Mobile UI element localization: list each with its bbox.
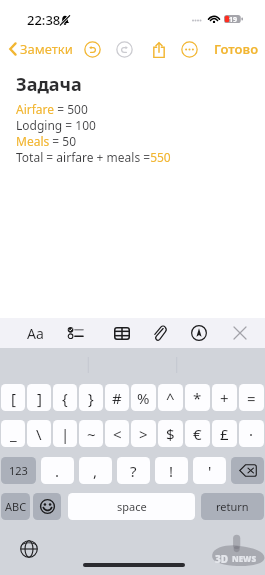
button[interactable]: Table: [108, 319, 136, 347]
staticText: #: [112, 388, 122, 408]
button[interactable]: Заметки: [9, 40, 73, 58]
button[interactable]: ·: [239, 420, 264, 447]
staticText: Задача: [16, 72, 82, 97]
button[interactable]: }: [79, 384, 103, 411]
button[interactable]: More options: [177, 37, 202, 62]
staticText: {: [62, 388, 68, 408]
staticText: ABC: [5, 499, 27, 514]
button[interactable]: 123: [1, 457, 36, 484]
button[interactable]: ]: [27, 384, 51, 411]
button[interactable]: €: [185, 420, 210, 447]
staticText: £: [220, 424, 229, 444]
staticText: ,: [93, 461, 98, 481]
staticText: ·: [249, 424, 254, 444]
staticText: %: [137, 388, 150, 408]
staticText: \: [36, 424, 42, 444]
button[interactable]: >: [131, 420, 156, 447]
staticText: $: [166, 424, 175, 444]
button[interactable]: Delete: [231, 457, 264, 484]
staticText: !: [169, 461, 174, 481]
staticText: 19: [229, 15, 238, 23]
staticText: >: [139, 424, 148, 444]
staticText: Airfare = 500 Lodging = 100 Meals = 50 T…: [16, 101, 171, 165]
staticText: +: [220, 388, 229, 408]
staticText: ?: [130, 461, 137, 481]
staticText: Заметки: [20, 40, 73, 58]
button[interactable]: Redo: [112, 37, 137, 62]
button[interactable]: =: [239, 384, 264, 411]
button[interactable]: \: [27, 420, 51, 447]
staticText: .: [55, 461, 60, 481]
staticText: 123: [9, 463, 28, 478]
staticText: 22:38: [27, 11, 61, 29]
staticText: Готово: [214, 40, 259, 58]
staticText: ': [208, 461, 212, 481]
staticText: space: [117, 499, 147, 514]
staticText: 3D: [215, 552, 229, 566]
button[interactable]: <: [105, 420, 129, 447]
button[interactable]: $: [158, 420, 183, 447]
button[interactable]: [: [1, 384, 25, 411]
button[interactable]: Share: [148, 38, 170, 62]
button[interactable]: Attach: [145, 319, 173, 347]
staticText: NEWS: [232, 553, 256, 564]
button[interactable]: *: [185, 384, 210, 411]
button[interactable]: ~: [79, 420, 103, 447]
button[interactable]: Checklist: [61, 319, 89, 347]
button[interactable]: £: [212, 420, 237, 447]
staticText: ^: [166, 388, 175, 408]
button[interactable]: Change language: [17, 537, 41, 561]
staticText: <: [113, 424, 122, 444]
button[interactable]: |: [53, 420, 77, 447]
button[interactable]: #: [105, 384, 129, 411]
button[interactable]: {: [53, 384, 77, 411]
button[interactable]: ^: [158, 384, 183, 411]
staticText: ]: [37, 388, 42, 408]
button[interactable]: Emoji: [33, 493, 61, 520]
button[interactable]: Markup: [185, 319, 213, 347]
staticText: =: [247, 388, 256, 408]
button[interactable]: Close keyboard: [226, 319, 254, 347]
button[interactable]: ,: [79, 457, 112, 484]
staticText: [: [11, 388, 16, 408]
staticText: *: [193, 388, 202, 408]
button[interactable]: Undo: [80, 37, 105, 62]
button[interactable]: .: [41, 457, 74, 484]
button[interactable]: %: [131, 384, 156, 411]
button[interactable]: Готово: [214, 40, 259, 58]
button[interactable]: ?: [117, 457, 150, 484]
staticText: ~: [87, 424, 96, 444]
staticText: |: [61, 424, 70, 444]
button[interactable]: +: [212, 384, 237, 411]
staticText: Aa: [27, 324, 44, 343]
button[interactable]: ': [193, 457, 226, 484]
staticText: }: [88, 388, 94, 408]
button[interactable]: Text format: [21, 319, 49, 347]
button[interactable]: !: [155, 457, 188, 484]
button[interactable]: return: [201, 493, 264, 520]
staticText: _: [10, 424, 17, 444]
button[interactable]: _: [1, 420, 25, 447]
button[interactable]: space: [68, 493, 195, 520]
staticText: €: [193, 424, 202, 444]
button[interactable]: ABC: [1, 493, 30, 520]
staticText: return: [216, 499, 249, 514]
